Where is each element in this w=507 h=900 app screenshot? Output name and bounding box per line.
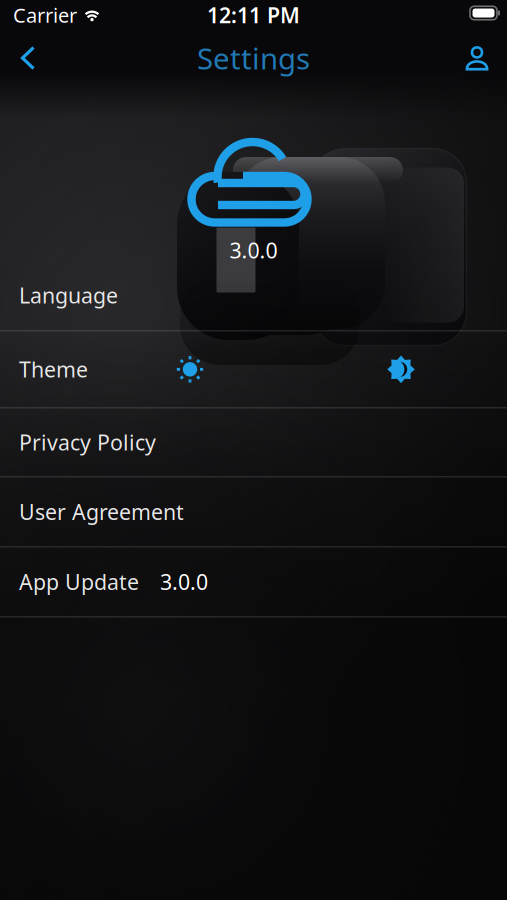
button[interactable]: Light theme	[167, 346, 213, 392]
button[interactable]: App Update	[0, 547, 507, 616]
button[interactable]: Privacy Policy	[0, 408, 507, 476]
button[interactable]: Theme	[0, 331, 507, 407]
button[interactable]: Dark theme	[378, 346, 424, 392]
staticText: Carrier	[13, 2, 77, 28]
staticText: App Update	[19, 568, 139, 596]
staticText: 12:11 PM	[207, 1, 300, 29]
staticText: Privacy Policy	[19, 428, 156, 456]
button[interactable]: Back	[0, 34, 66, 82]
button[interactable]: Account	[442, 34, 507, 82]
button[interactable]: User Agreement	[0, 477, 507, 546]
staticText: User Agreement	[19, 498, 184, 526]
staticText: Theme	[19, 355, 88, 383]
button[interactable]: Language	[0, 260, 507, 330]
staticText: Settings	[197, 38, 310, 77]
staticText: Language	[19, 281, 118, 309]
staticText: 3.0.0	[160, 568, 208, 596]
staticText: 3.0.0	[229, 236, 277, 264]
